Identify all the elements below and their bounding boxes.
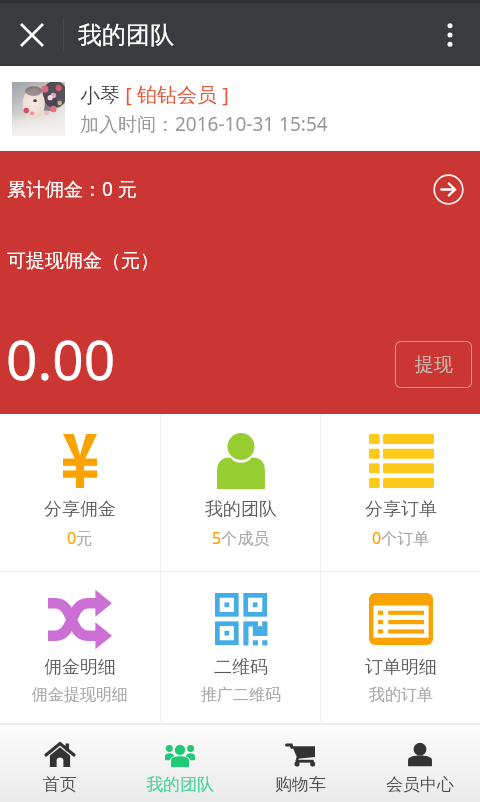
button[interactable]: 小琴 [ 铂钻会员 ] (0, 66, 480, 151)
button[interactable]: 我的团队 (161, 414, 320, 571)
staticText: 0.00 (6, 321, 116, 396)
button[interactable]: 二维码 (161, 572, 320, 722)
staticText: 购物车 (275, 774, 326, 795)
staticText: 订单明细 (365, 656, 437, 679)
staticText: 提现 (415, 353, 453, 377)
staticText: 我的订单 (369, 685, 433, 705)
staticText: 小琴 [ 铂钻会员 ] (80, 81, 229, 108)
staticText: 可提现佣金（元） (7, 249, 159, 273)
staticText: 0元 (67, 527, 93, 549)
button[interactable]: Details (433, 174, 464, 205)
staticText: 我的团队 (205, 498, 277, 521)
staticText: 5个成员 (212, 527, 270, 549)
button[interactable]: 首页 (0, 725, 120, 802)
staticText: 会员中心 (386, 774, 454, 795)
button[interactable]: 会员中心 (360, 725, 480, 802)
button[interactable]: 提现 (395, 341, 472, 388)
button[interactable]: 分享订单 (321, 414, 480, 571)
staticText: 佣金明细 (44, 656, 116, 679)
staticText: 加入时间：2016-10-31 15:54 (80, 111, 328, 137)
staticText: 分享佣金 (44, 498, 116, 521)
button[interactable]: 订单明细 (321, 572, 480, 722)
staticText: 推广二维码 (201, 685, 281, 705)
staticText: 首页 (43, 774, 77, 795)
staticText: 0个订单 (372, 527, 430, 549)
staticText: 佣金提现明细 (32, 685, 128, 705)
button[interactable]: 分享佣金 (0, 414, 160, 571)
button[interactable]: 购物车 (240, 725, 360, 802)
staticText: 二维码 (214, 656, 268, 679)
staticText: 我的团队 (78, 20, 174, 50)
button[interactable]: More options (426, 11, 474, 59)
staticText: 分享订单 (365, 498, 437, 521)
button[interactable]: Close (8, 11, 56, 59)
staticText: 我的团队 (146, 774, 214, 795)
button[interactable]: 佣金明细 (0, 572, 160, 722)
button[interactable]: 我的团队 (120, 725, 240, 802)
staticText: 累计佣金：0 元 (7, 176, 137, 202)
